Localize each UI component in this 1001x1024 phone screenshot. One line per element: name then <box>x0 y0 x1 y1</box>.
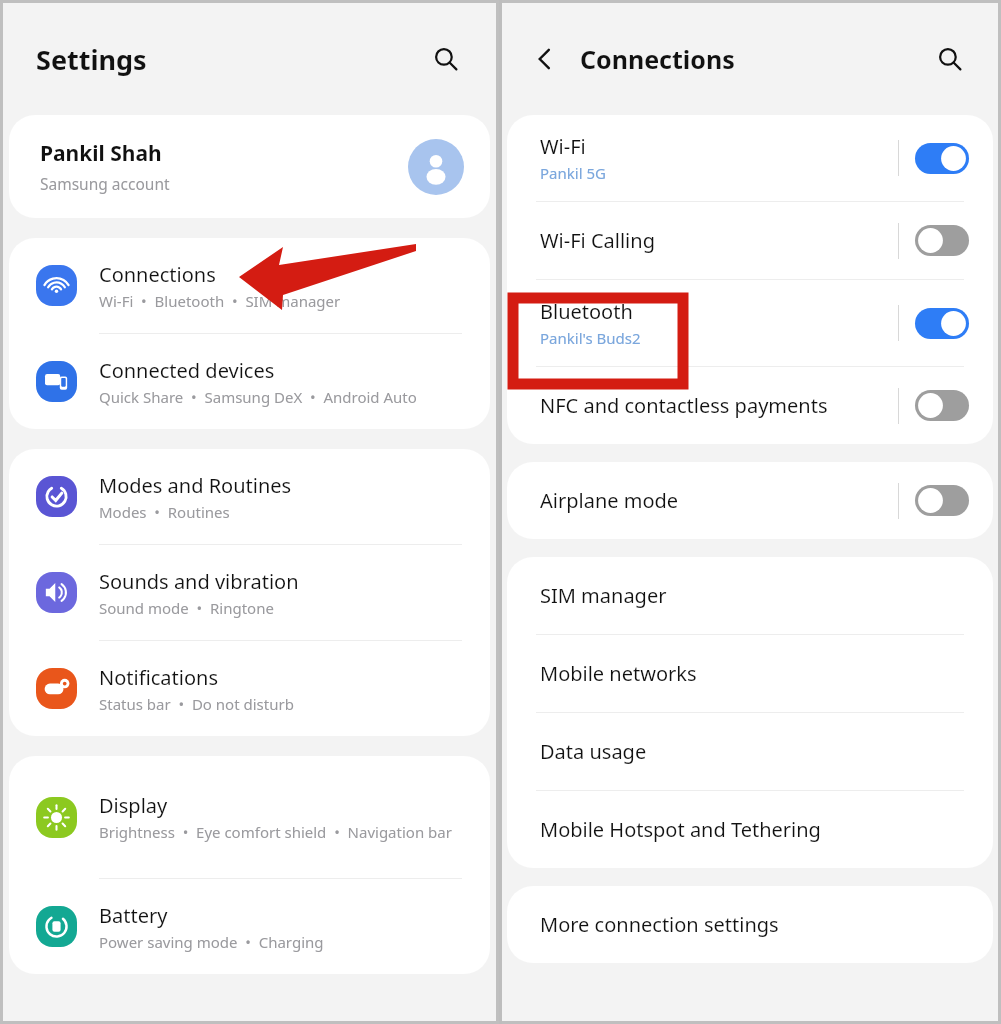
button[interactable]: Sounds and vibration <box>9 545 490 640</box>
button[interactable]: Airplane mode <box>507 462 993 539</box>
button[interactable]: Bluetooth toggle <box>915 308 969 339</box>
button[interactable]: Wi-Fi <box>507 115 993 201</box>
button[interactable]: Search <box>928 37 972 81</box>
button[interactable]: More connection settings <box>507 886 993 963</box>
staticText: Settings <box>36 41 147 78</box>
button[interactable]: SIM manager <box>507 557 993 634</box>
button[interactable]: Display <box>9 756 490 878</box>
button[interactable]: Airplane mode toggle <box>915 485 969 516</box>
staticText: Sound mode • Ringtone <box>99 598 274 618</box>
staticText: Power saving mode • Charging <box>99 932 324 952</box>
button[interactable]: Mobile Hotspot and Tethering <box>507 791 993 868</box>
staticText: Pankil Shah <box>40 139 162 168</box>
staticText: Quick Share • Samsung DeX • Android Auto <box>99 387 417 407</box>
staticText: Sounds and vibration <box>99 568 299 595</box>
staticText: Pankil's Buds2 <box>540 328 641 348</box>
button[interactable]: Pankil Shah <box>9 115 490 218</box>
staticText: Modes • Routines <box>99 502 230 522</box>
staticText: Mobile networks <box>540 660 697 687</box>
staticText: Battery <box>99 902 168 929</box>
staticText: Modes and Routines <box>99 472 292 499</box>
staticText: Wi-Fi Calling <box>540 227 655 254</box>
button[interactable]: NFC and contactless payments <box>507 367 993 444</box>
staticText: Wi-Fi <box>540 133 586 160</box>
button[interactable]: Battery <box>9 879 490 974</box>
staticText: SIM manager <box>540 582 667 609</box>
staticText: Brightness • Eye comfort shield • Naviga… <box>99 822 452 842</box>
staticText: Samsung account <box>40 173 170 194</box>
button[interactable]: Wi-Fi toggle <box>915 143 969 174</box>
button[interactable]: Wi-Fi Calling <box>507 202 993 279</box>
button[interactable]: Search <box>424 37 468 81</box>
staticText: NFC and contactless payments <box>540 392 828 419</box>
staticText: Bluetooth <box>540 298 633 325</box>
button[interactable]: Mobile networks <box>507 635 993 712</box>
staticText: More connection settings <box>540 911 779 938</box>
staticText: Pankil 5G <box>540 163 606 183</box>
staticText: Status bar • Do not disturb <box>99 694 294 714</box>
staticText: Connections <box>99 261 216 288</box>
staticText: Display <box>99 792 168 819</box>
staticText: Wi-Fi • Bluetooth • SIM manager <box>99 291 341 311</box>
button[interactable]: Back <box>524 38 566 80</box>
staticText: Notifications <box>99 664 218 691</box>
button[interactable]: Notifications <box>9 641 490 736</box>
button[interactable]: Data usage <box>507 713 993 790</box>
staticText: Connections <box>580 42 735 76</box>
button[interactable]: Connected devices <box>9 334 490 429</box>
button[interactable]: Bluetooth <box>507 280 993 366</box>
staticText: Connected devices <box>99 357 275 384</box>
staticText: Mobile Hotspot and Tethering <box>540 816 821 843</box>
button[interactable]: Modes and Routines <box>9 449 490 544</box>
button[interactable]: Connections <box>9 238 490 333</box>
staticText: Airplane mode <box>540 487 679 514</box>
button[interactable]: Wi-Fi Calling toggle <box>915 225 969 256</box>
staticText: Data usage <box>540 738 647 765</box>
button[interactable]: NFC and contactless payments toggle <box>915 390 969 421</box>
